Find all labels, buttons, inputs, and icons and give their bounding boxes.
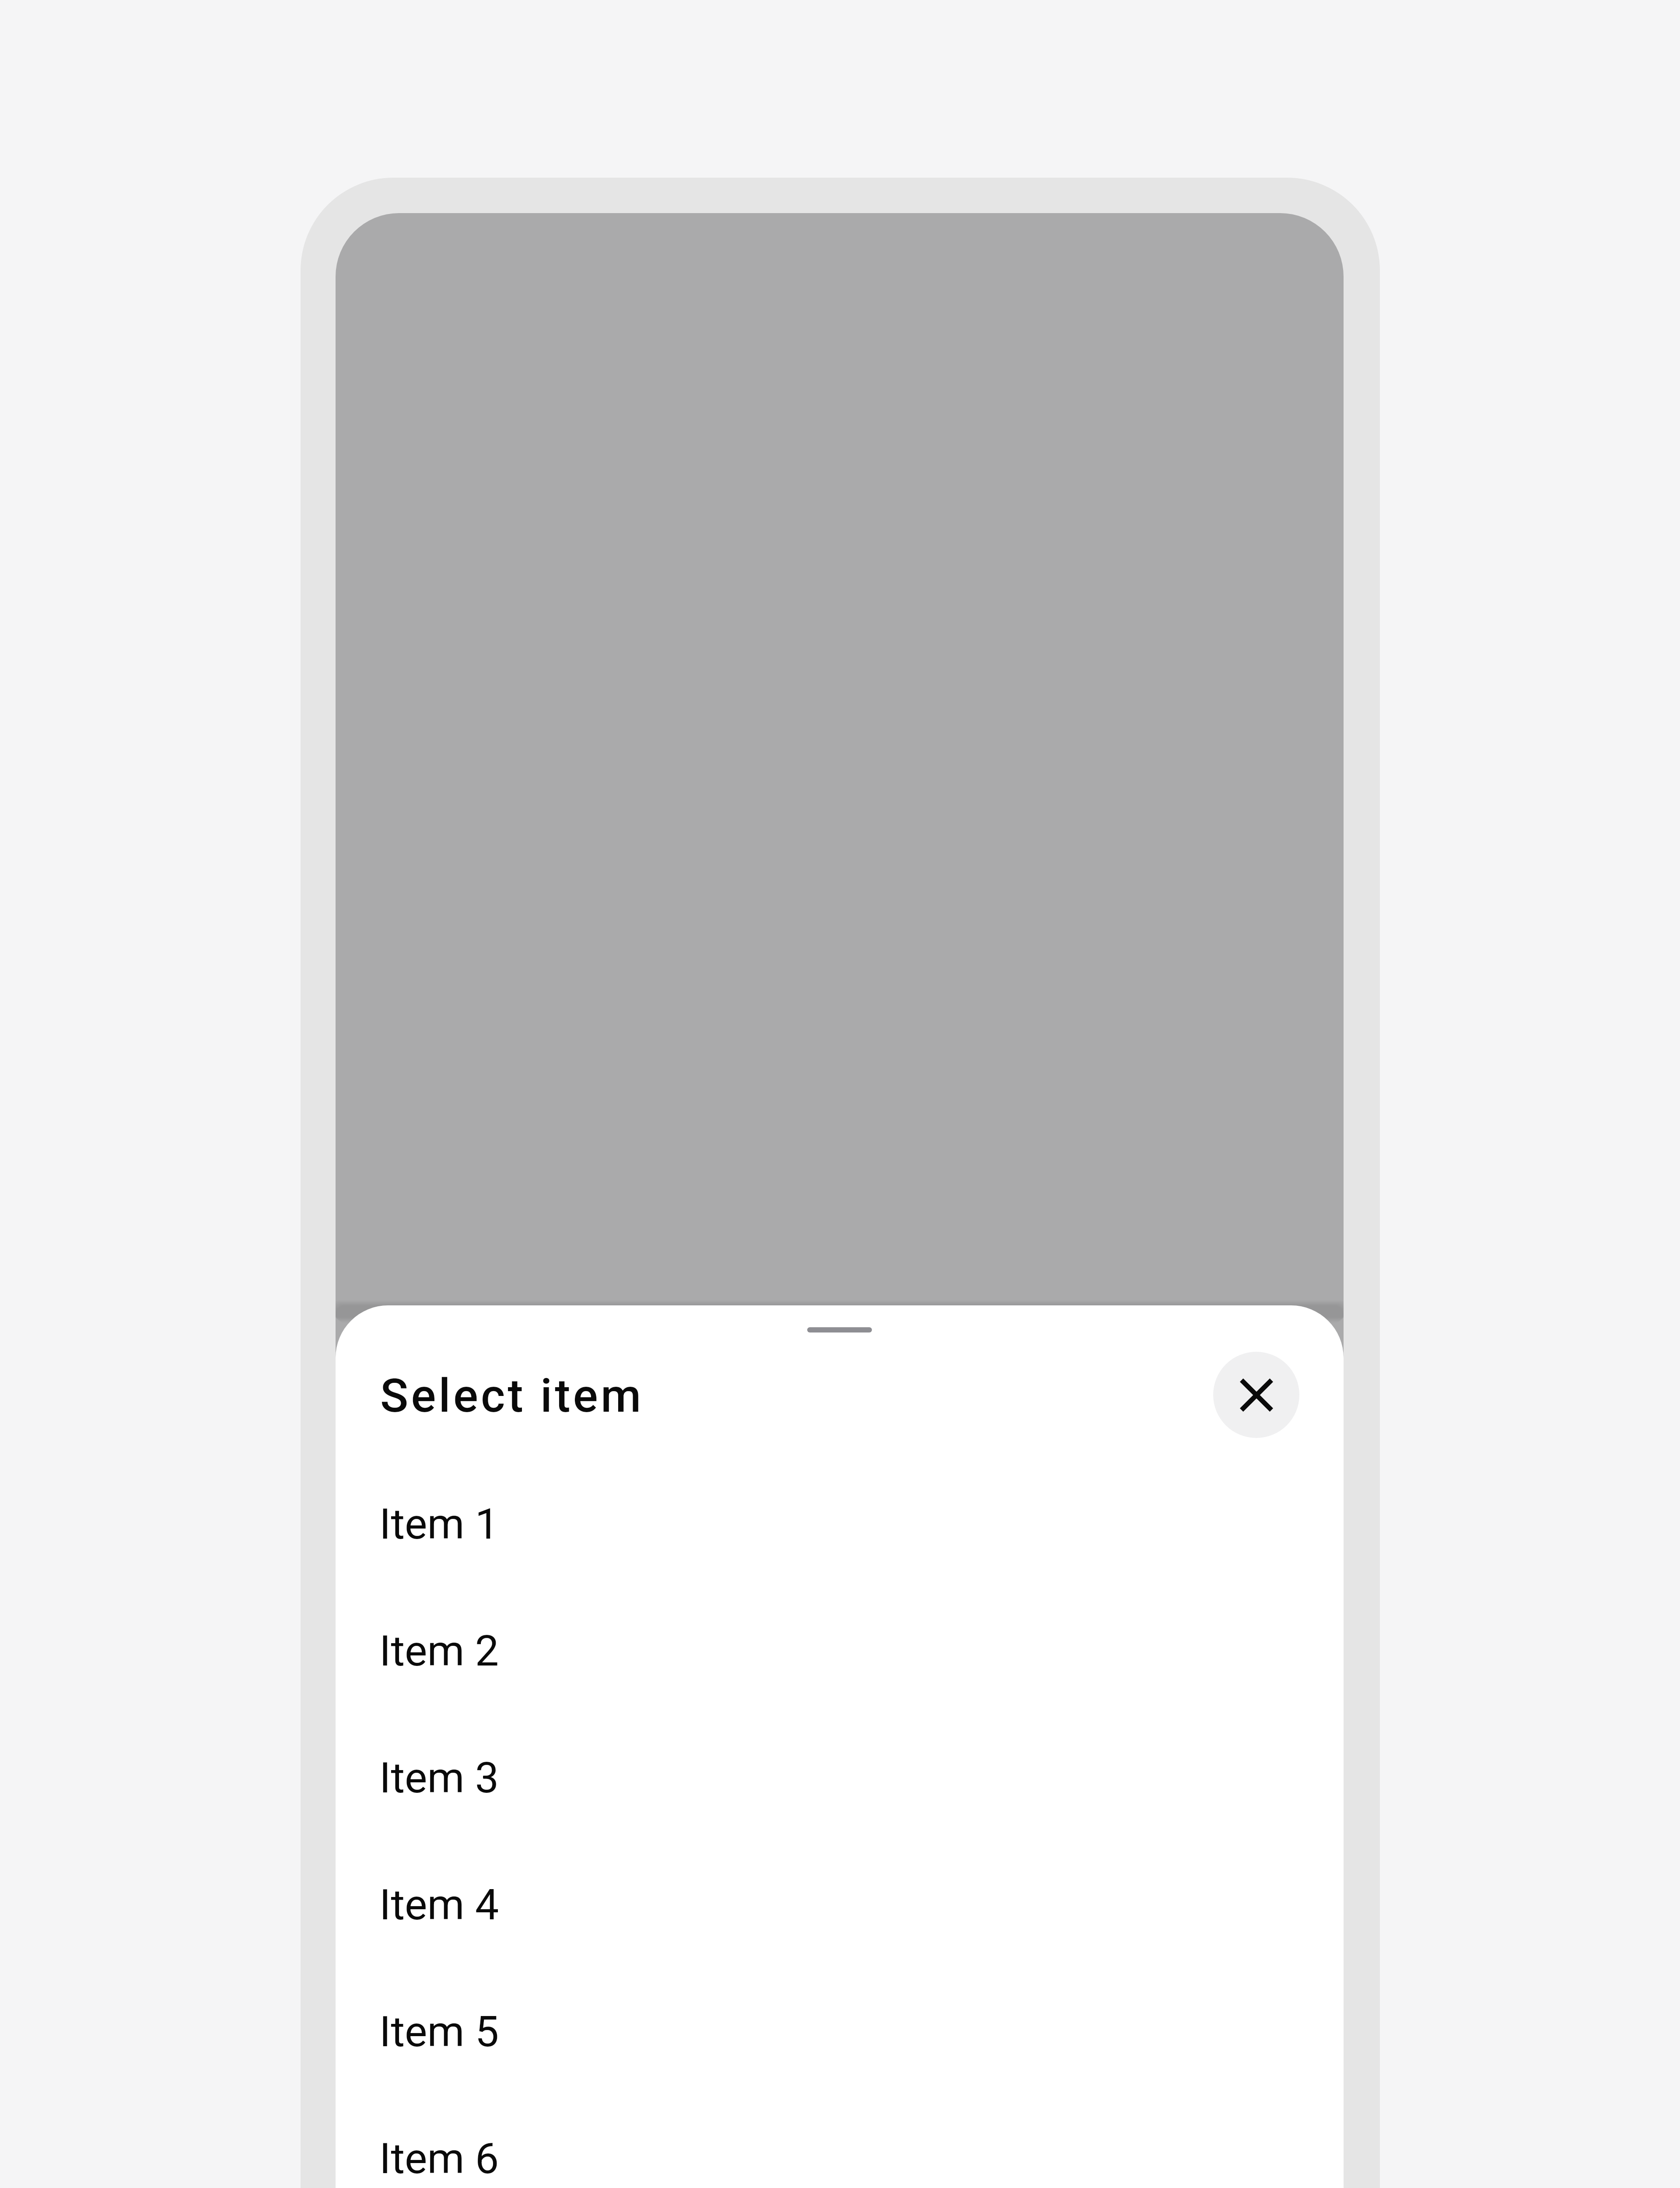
button[interactable]: Item 6 xyxy=(336,2095,1344,2188)
staticText: Select item xyxy=(380,1369,644,1423)
button[interactable]: Item 2 xyxy=(336,1588,1344,1715)
staticText: Item 1 xyxy=(379,1499,499,1549)
staticText: Item 3 xyxy=(379,1753,499,1803)
button[interactable]: Item 4 xyxy=(336,1841,1344,1968)
staticText: Item 6 xyxy=(379,2134,499,2184)
staticText: Item 2 xyxy=(379,1626,499,1676)
staticText: Item 4 xyxy=(379,1880,499,1930)
button[interactable]: Close xyxy=(1213,1352,1299,1438)
button[interactable]: Item 1 xyxy=(336,1461,1344,1588)
button[interactable]: Item 5 xyxy=(336,1968,1344,2095)
staticText: Item 5 xyxy=(379,2007,499,2057)
button[interactable]: Item 3 xyxy=(336,1715,1344,1841)
